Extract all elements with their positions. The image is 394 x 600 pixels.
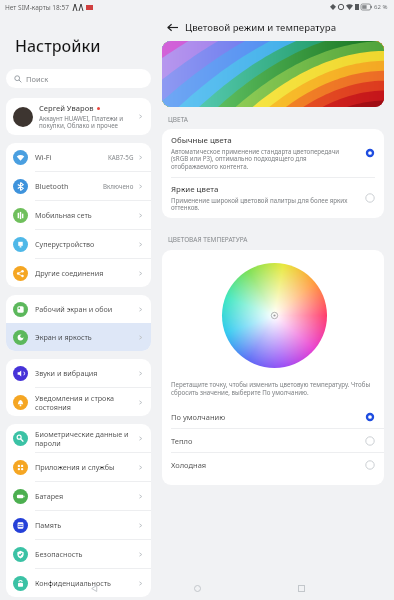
staticText: Холодная [171,460,365,470]
button[interactable]: Биометрические данные и пароли [6,424,151,452]
button[interactable]: Тепло [162,429,384,452]
staticText: Звуки и вибрация [35,368,137,378]
staticText: Рабочий экран и обои [35,304,137,314]
staticText: Wi-Fi [35,152,108,162]
button[interactable]: Память [6,511,151,539]
button[interactable]: Недавние [291,578,311,598]
button[interactable]: Назад [163,18,181,36]
button[interactable]: Экран и яркость [6,323,151,351]
button[interactable]: Звуки и вибрация [6,359,151,387]
button[interactable]: Мобильная сеть [6,201,151,229]
staticText: Bluetooth [35,181,103,191]
staticText: Аккаунт HUAWEI, Платежи и покупки, Облак… [39,114,134,130]
staticText: Обычные цвета [171,135,232,146]
button[interactable]: Приложения и службы [6,453,151,481]
button[interactable]: Конфиденциальность [6,569,151,597]
button[interactable]: Яркие цвета [171,178,375,218]
staticText: Автоматическое применение стандарта цвет… [171,147,355,171]
button[interactable]: Батарея [6,482,151,510]
button[interactable]: Рабочий экран и обои [6,295,151,323]
staticText: Настройки [15,35,101,57]
staticText: Тепло [171,436,365,446]
staticText: Включено [103,182,134,190]
button[interactable]: Суперустройство [6,230,151,258]
staticText: Приложения и службы [35,462,137,472]
staticText: Суперустройство [35,239,137,249]
staticText: Перетащите точку, чтобы изменить цветову… [171,380,375,396]
staticText: ЦВЕТОВАЯ ТЕМПЕРАТУРА [168,235,248,244]
button[interactable]: Bluetooth [6,172,151,200]
staticText: Уведомления и строка состояния [35,393,137,412]
staticText: Мобильная сеть [35,210,137,220]
staticText: Конфиденциальность [35,578,137,588]
button[interactable]: Холодная [162,453,384,476]
button[interactable]: Другие соединения [6,259,151,287]
staticText: 62 % [374,3,388,11]
staticText: ЦВЕТА [168,115,188,124]
staticText: Яркие цвета [171,184,219,195]
staticText: Сергей Уваров [39,103,94,113]
staticText: По умолчанию [171,412,365,422]
button[interactable]: Безопасность [6,540,151,568]
button[interactable]: Wi-Fi [6,143,151,171]
staticText: Безопасность [35,549,137,559]
staticText: Память [35,520,137,530]
staticText: Батарея [35,491,137,501]
staticText: Применение широкой цветовой палитры для … [171,196,355,212]
button[interactable]: Сергей Уваров [6,98,151,135]
staticText: Экран и яркость [35,332,137,342]
staticText: Биометрические данные и пароли [35,429,137,448]
button[interactable]: По умолчанию [162,405,384,428]
staticText: Поиск [26,74,49,84]
staticText: KAB7-5G [108,153,134,161]
button[interactable]: Назад [84,578,104,598]
button[interactable]: Уведомления и строка состояния [6,388,151,416]
staticText: Цветовой режим и температура [185,21,337,34]
staticText: Нет SIM-карты 18:57 [5,3,69,12]
button[interactable]: Обычные цвета [171,129,375,177]
staticText: Другие соединения [35,268,137,278]
button[interactable]: Главный экран [187,578,207,598]
button[interactable]: Поиск [6,69,151,88]
